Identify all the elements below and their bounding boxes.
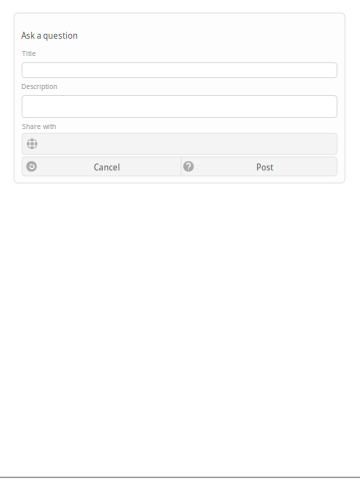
staticText: Ask a question xyxy=(21,30,78,41)
button[interactable]: Share with audience xyxy=(22,133,337,154)
staticText: Cancel xyxy=(94,162,120,173)
staticText: Post xyxy=(256,162,273,173)
button[interactable]: Description xyxy=(22,95,337,117)
button[interactable]: Title xyxy=(22,63,337,78)
button[interactable]: Cancel xyxy=(22,157,181,176)
staticText: Title xyxy=(22,49,36,58)
staticText: Description xyxy=(21,82,57,91)
button[interactable]: Post xyxy=(181,157,337,176)
staticText: Share with xyxy=(22,122,56,131)
